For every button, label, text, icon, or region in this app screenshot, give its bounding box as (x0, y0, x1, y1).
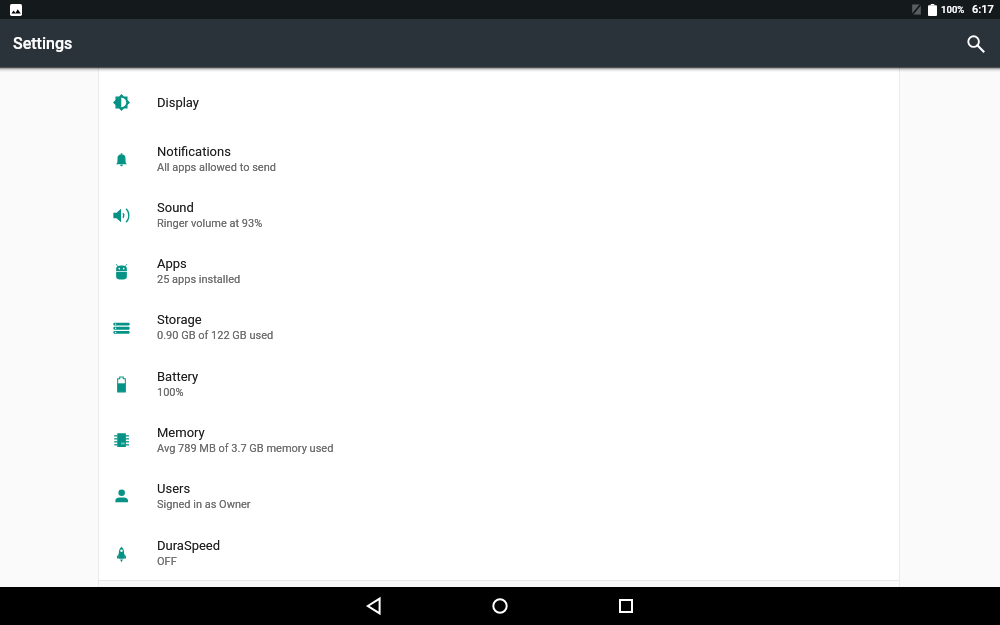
staticText: Apps (157, 256, 187, 271)
staticText: Avg 789 MB of 3.7 GB memory used (157, 442, 334, 455)
staticText: 25 apps installed (157, 273, 241, 286)
staticText: Display (157, 95, 199, 110)
staticText: Storage (157, 312, 202, 327)
staticText: Apps (157, 256, 187, 271)
button[interactable]: Display (98, 74, 900, 130)
button[interactable]: Users (98, 468, 900, 524)
staticText: Users (157, 481, 191, 496)
button[interactable]: Memory (98, 412, 900, 468)
staticText: DuraSpeed (157, 538, 221, 553)
staticText: Notifications (157, 144, 231, 159)
staticText: OFF (157, 555, 177, 568)
staticText: OFF (157, 555, 177, 568)
button[interactable]: Back (351, 587, 397, 625)
staticText: Avg 789 MB of 3.7 GB memory used (157, 442, 334, 455)
staticText: 0.90 GB of 122 GB used (157, 329, 274, 342)
staticText: 100% (941, 4, 965, 15)
staticText: Ringer volume at 93% (157, 217, 263, 230)
button[interactable]: Home (477, 587, 523, 625)
button[interactable]: Search (960, 28, 990, 58)
staticText: Battery (157, 369, 199, 384)
staticText: Sound (157, 200, 194, 215)
staticText: Storage (157, 312, 202, 327)
staticText: Notifications (157, 144, 231, 159)
button[interactable]: Notifications (98, 131, 900, 187)
staticText: Signed in as Owner (157, 498, 251, 511)
button[interactable]: DuraSpeed (98, 525, 900, 581)
button[interactable]: Sound (98, 187, 900, 243)
staticText: 100% (157, 386, 184, 399)
staticText: Sound (157, 200, 194, 215)
staticText: Signed in as Owner (157, 498, 251, 511)
staticText: 25 apps installed (157, 273, 241, 286)
staticText: 0.90 GB of 122 GB used (157, 329, 274, 342)
button[interactable]: Recent apps (603, 587, 649, 625)
staticText: Memory (157, 425, 205, 440)
button[interactable]: Battery (98, 356, 900, 412)
staticText: Ringer volume at 93% (157, 217, 263, 230)
staticText: Display (157, 95, 199, 110)
staticText: Settings (13, 34, 73, 53)
staticText: 6:17 (972, 3, 994, 16)
staticText: Memory (157, 425, 205, 440)
button[interactable]: Apps (98, 243, 900, 299)
staticText: Battery (157, 369, 199, 384)
button[interactable]: Storage (98, 299, 900, 355)
staticText: All apps allowed to send (157, 161, 276, 174)
staticText: 100% (157, 386, 184, 399)
staticText: All apps allowed to send (157, 161, 276, 174)
staticText: Users (157, 481, 191, 496)
staticText: DuraSpeed (157, 538, 221, 553)
